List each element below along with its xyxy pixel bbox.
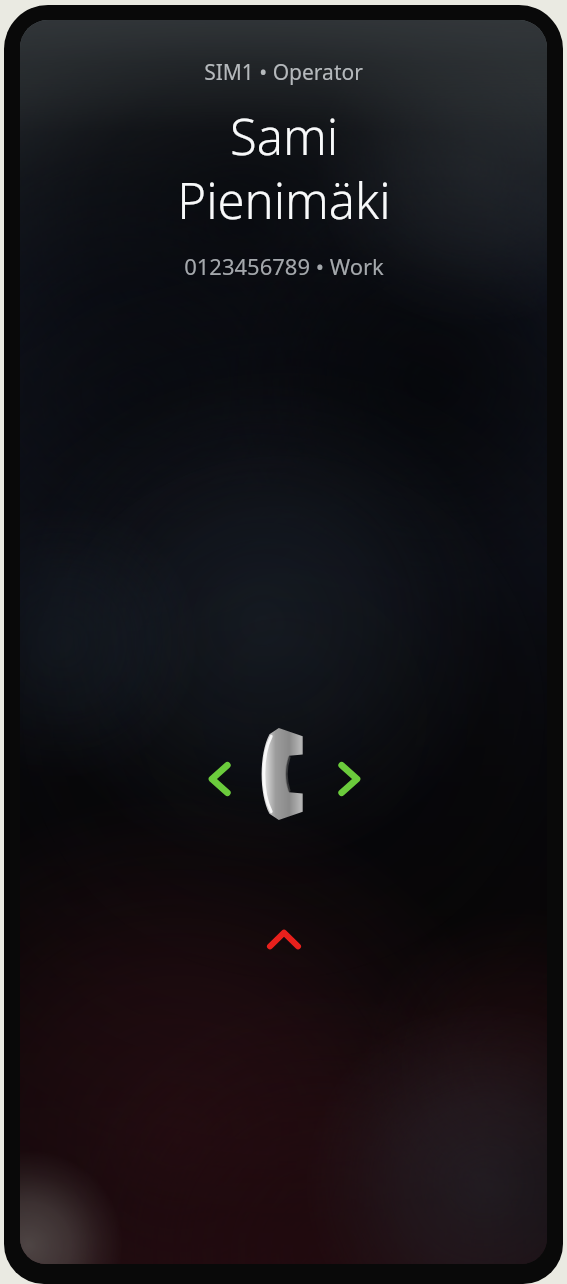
button[interactable]: Answer, swipe left xyxy=(196,756,242,802)
button[interactable]: Decline call, swipe up xyxy=(253,916,315,962)
staticText: 0123456789 • Work xyxy=(184,251,384,281)
staticText: Sami Pienimäki xyxy=(177,103,391,234)
button[interactable]: Answer, swipe right xyxy=(327,756,373,802)
button[interactable]: Answer call xyxy=(258,725,310,823)
staticText: SIM1 • Operator xyxy=(204,58,363,87)
